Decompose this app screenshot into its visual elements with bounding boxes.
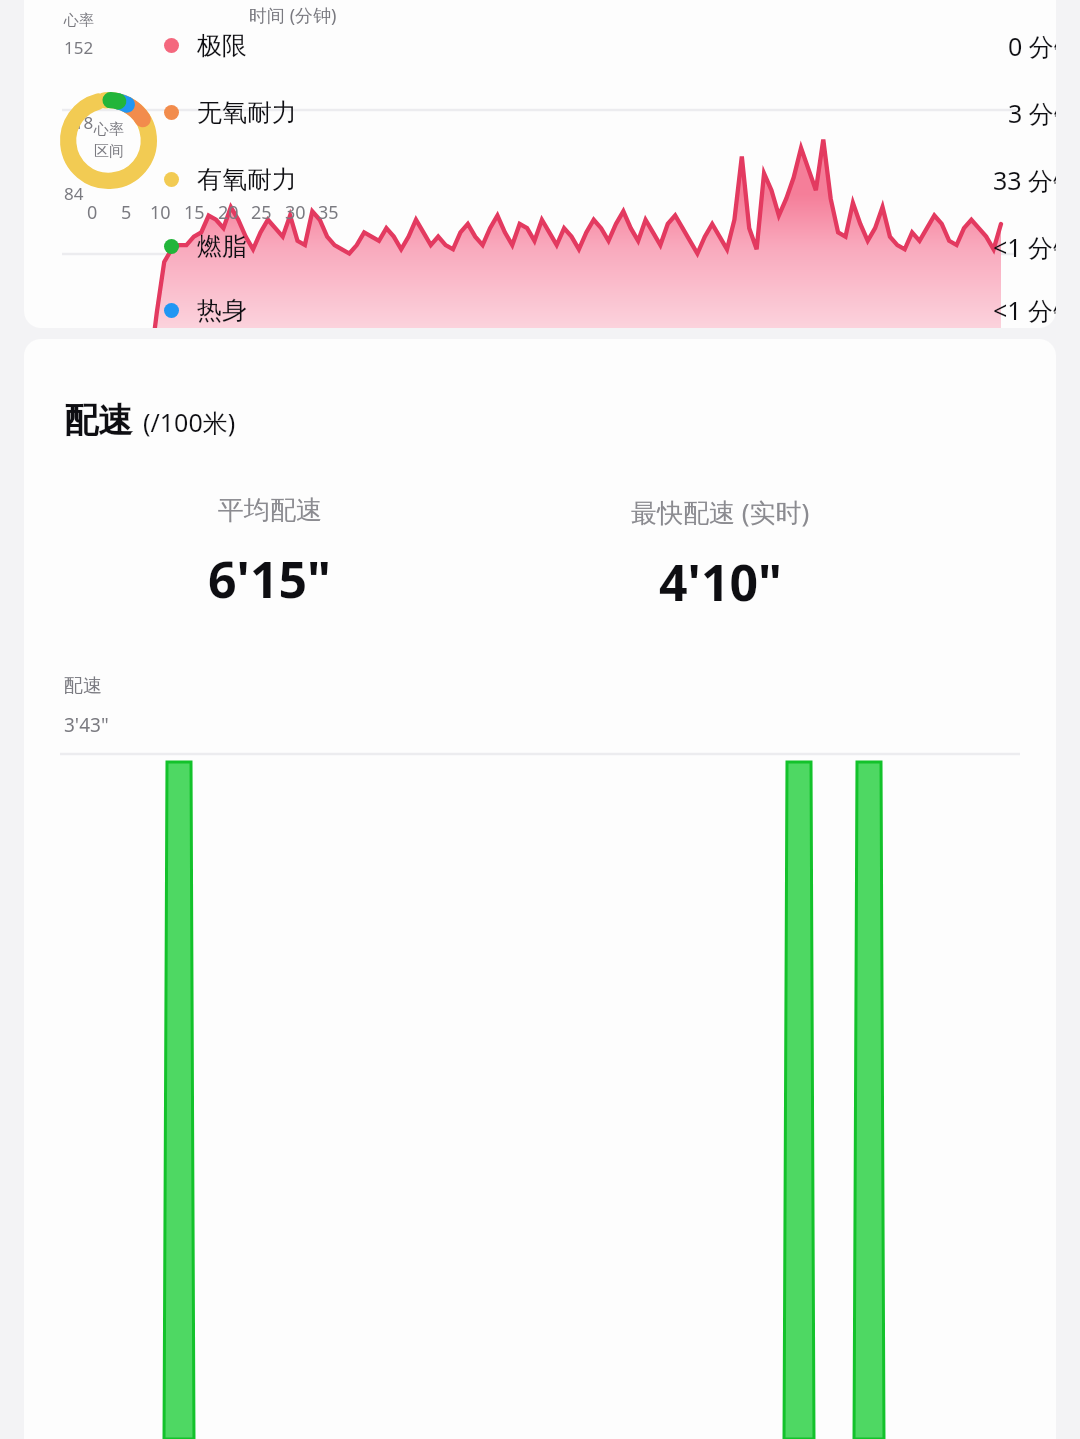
staticText: 4'10"	[659, 548, 783, 616]
staticText: 心率	[64, 11, 94, 30]
staticText: 无氧耐力	[197, 97, 297, 128]
button[interactable]: 心率	[24, 0, 1056, 328]
staticText: 5	[121, 200, 132, 225]
staticText: 6'15"	[208, 545, 332, 613]
staticText: 0	[87, 200, 98, 225]
button[interactable]: 热身	[164, 280, 1056, 328]
button[interactable]: 有氧耐力	[164, 146, 1056, 213]
staticText: 区间	[94, 142, 124, 161]
button[interactable]: 无氧耐力	[164, 79, 1056, 146]
button[interactable]: 极限	[164, 12, 1056, 79]
staticText: <1 分钟	[993, 293, 1056, 327]
staticText: 热身	[197, 295, 247, 326]
button[interactable]: 心率区间	[60, 92, 157, 189]
staticText: 152	[64, 36, 94, 59]
staticText: 时间 (分钟)	[249, 3, 337, 28]
staticText: 15	[184, 200, 205, 225]
staticText: 25	[251, 200, 272, 225]
staticText: 30	[285, 200, 306, 225]
staticText: 有氧耐力	[197, 164, 297, 195]
button[interactable]: 平均配速	[44, 494, 495, 613]
staticText: (/100米)	[143, 405, 236, 439]
staticText: 84	[64, 182, 84, 205]
staticText: <1 分钟	[993, 230, 1056, 264]
staticText: 20	[218, 200, 239, 225]
staticText: 平均配速	[218, 494, 322, 527]
staticText: 最快配速 (实时)	[631, 494, 810, 530]
staticText: 燃脂	[197, 231, 247, 262]
staticText: 3 分钟	[1008, 96, 1056, 130]
staticText: 118	[64, 111, 94, 134]
staticText: 心率	[94, 120, 124, 139]
staticText: 3'43"	[64, 712, 109, 738]
button[interactable]: 燃脂	[164, 213, 1056, 280]
staticText: 0 分钟	[1008, 29, 1056, 63]
button[interactable]: 配速	[24, 339, 1056, 1439]
staticText: 配速	[64, 399, 132, 442]
button[interactable]: 最快配速 (实时)	[495, 494, 946, 616]
staticText: 配速	[64, 674, 102, 698]
staticText: 33 分钟	[993, 163, 1056, 197]
staticText: 极限	[197, 30, 247, 61]
staticText: 35	[318, 200, 339, 225]
staticText: 10	[150, 200, 171, 225]
